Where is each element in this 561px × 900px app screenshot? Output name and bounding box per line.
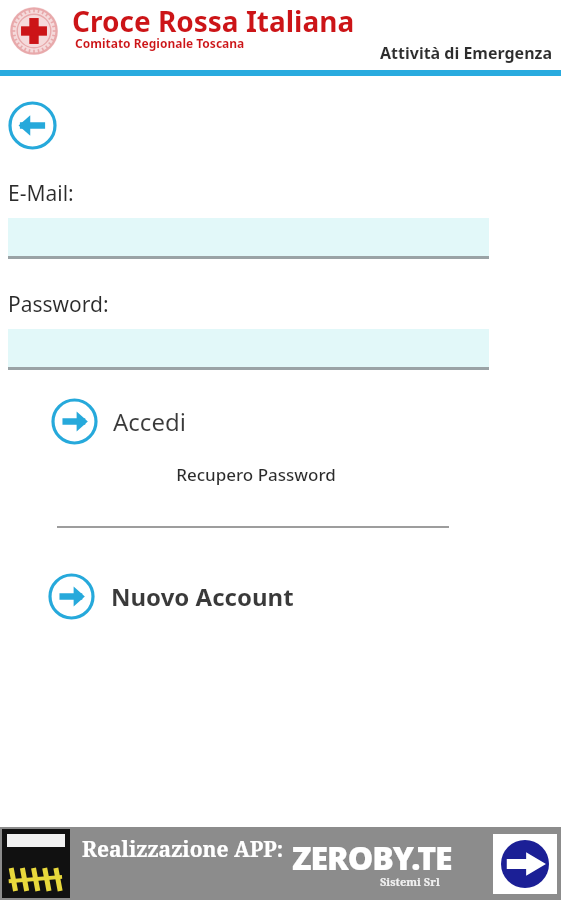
button[interactable]: Recupero Password	[0, 461, 561, 488]
button[interactable]: Nuovo Account	[0, 573, 561, 620]
button[interactable]: Realizzazione APP ZEROBYTE Sistemi Srl	[0, 827, 561, 900]
staticText: Sistemi Srl	[380, 874, 440, 889]
staticText: Accedi	[113, 405, 186, 438]
staticText: Realizzazione APP:	[82, 835, 284, 864]
staticText: Recupero Password	[176, 463, 336, 486]
staticText: Croce Rossa Italiana	[72, 2, 355, 40]
button[interactable]: Open website	[493, 834, 557, 894]
button[interactable]: Accedi	[0, 398, 561, 445]
staticText: Password:	[8, 290, 109, 319]
staticText: Comitato Regionale Toscana	[75, 35, 245, 51]
staticText: ZEROBY.TE	[292, 836, 452, 880]
staticText: Nuovo Account	[111, 580, 294, 613]
button[interactable]: Back	[8, 101, 57, 150]
staticText: Attività di Emergenza	[380, 42, 553, 64]
staticText: E-Mail:	[8, 179, 74, 208]
